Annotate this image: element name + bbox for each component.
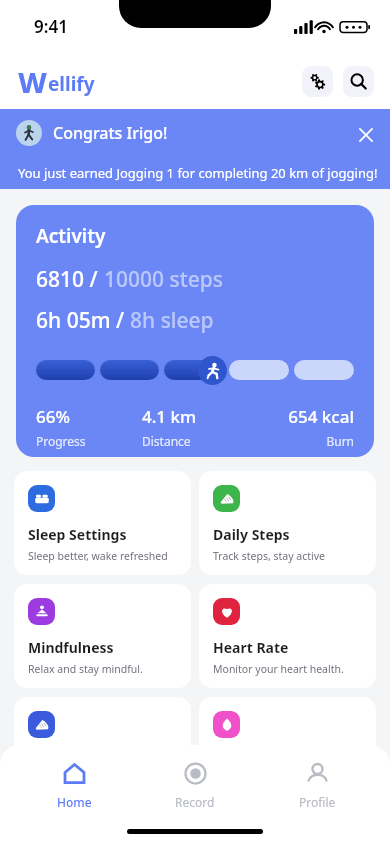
staticText: Profile: [299, 794, 336, 810]
staticText: 4.1 km: [142, 405, 248, 428]
staticText: Home: [57, 794, 92, 810]
staticText: ellify: [48, 71, 95, 97]
staticText: Progress: [36, 433, 142, 449]
staticText: Congrats Irigo!: [53, 122, 168, 144]
button[interactable]: Home: [26, 759, 122, 812]
staticText: 9:41: [34, 15, 68, 38]
staticText: Workout: [28, 751, 89, 770]
staticText: Build strength daily.: [28, 775, 127, 789]
button[interactable]: Workout: [14, 697, 191, 801]
staticText: Distance: [142, 433, 248, 449]
staticText: 8h sleep: [130, 306, 214, 335]
staticText: Sleep Settings: [28, 525, 127, 544]
staticText: Record: [175, 794, 215, 810]
staticText: Sleep better, wake refreshed: [28, 549, 168, 563]
button[interactable]: Search: [343, 66, 374, 97]
staticText: Burn: [248, 433, 354, 449]
staticText: 6h 05m /: [36, 306, 130, 335]
staticText: 654 kcal: [248, 405, 354, 428]
staticText: Activity: [36, 223, 106, 249]
staticText: Heart Rate: [213, 638, 289, 657]
staticText: Stay hydrated today.: [213, 775, 314, 789]
button[interactable]: Hydration: [199, 697, 376, 801]
button[interactable]: Profile: [269, 759, 365, 812]
button[interactable]: Record: [147, 759, 243, 812]
button[interactable]: Mindfulness: [14, 584, 191, 688]
staticText: Daily Steps: [213, 525, 290, 544]
button[interactable]: Close: [352, 121, 380, 149]
staticText: Track steps, stay active: [213, 549, 325, 563]
staticText: You just earned Jogging 1 for completing…: [18, 164, 378, 182]
staticText: 10000 steps: [104, 265, 224, 294]
staticText: 66%: [36, 405, 142, 428]
button[interactable]: Heart Rate: [199, 584, 376, 688]
staticText: 6810 /: [36, 265, 104, 294]
staticText: W: [18, 62, 48, 101]
staticText: Monitor your heart health.: [213, 662, 344, 676]
staticText: Mindfulness: [28, 638, 114, 657]
button[interactable]: Daily Steps: [199, 471, 376, 575]
button[interactable]: Sleep Settings: [14, 471, 191, 575]
staticText: Relax and stay mindful.: [28, 662, 143, 676]
button[interactable]: Activity: [16, 205, 374, 457]
button[interactable]: Settings: [302, 66, 333, 97]
